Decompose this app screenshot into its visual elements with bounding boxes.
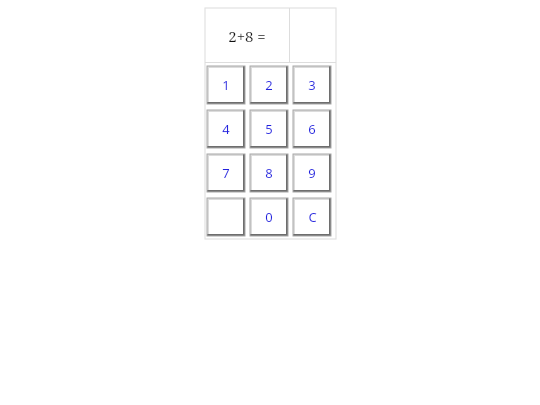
button[interactable]: 5 xyxy=(250,110,288,148)
staticText: 2+8 = xyxy=(228,26,266,46)
staticText: 6 xyxy=(308,120,316,138)
staticText: 2 xyxy=(265,76,273,94)
button[interactable]: Blank key xyxy=(207,198,245,236)
button[interactable]: 2 xyxy=(250,66,288,104)
staticText: 5 xyxy=(265,120,273,138)
staticText: 7 xyxy=(222,164,230,182)
button[interactable]: 4 xyxy=(207,110,245,148)
staticText: 4 xyxy=(222,120,230,138)
button[interactable]: 7 xyxy=(207,154,245,192)
button[interactable]: C xyxy=(293,198,331,236)
staticText: 8 xyxy=(265,164,273,182)
staticText: 1 xyxy=(222,76,230,94)
button[interactable]: 2+8 = xyxy=(205,8,289,63)
staticText: 9 xyxy=(308,164,316,182)
button[interactable]: 1 xyxy=(207,66,245,104)
button[interactable]: 0 xyxy=(250,198,288,236)
button[interactable]: 8 xyxy=(250,154,288,192)
staticText: 0 xyxy=(265,208,273,226)
button[interactable]: Result xyxy=(290,8,336,63)
button[interactable]: 6 xyxy=(293,110,331,148)
staticText: C xyxy=(308,208,317,226)
staticText: 3 xyxy=(308,76,316,94)
button[interactable]: 3 xyxy=(293,66,331,104)
button[interactable]: 9 xyxy=(293,154,331,192)
